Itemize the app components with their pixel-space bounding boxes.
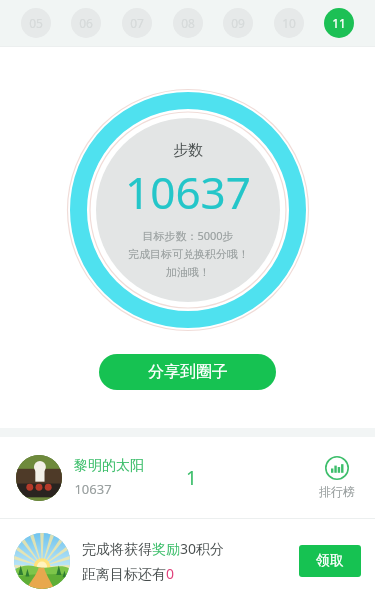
staticText: 黎明的太阳: [74, 457, 144, 475]
staticText: 分享到圈子: [148, 362, 228, 382]
button[interactable]: 09: [223, 8, 253, 38]
staticText: 加油哦！: [166, 265, 210, 279]
staticText: 11: [332, 15, 346, 31]
button[interactable]: 05: [21, 8, 51, 38]
staticText: 07: [130, 15, 144, 31]
staticText: 距离目标还有0: [82, 564, 175, 583]
staticText: 排行榜: [319, 484, 355, 499]
button[interactable]: 排行榜 Leaderboard: [315, 452, 359, 503]
button[interactable]: 领取: [299, 545, 361, 577]
staticText: 目标步数：5000步: [142, 228, 234, 243]
staticText: 步数: [173, 141, 203, 160]
button[interactable]: 06: [71, 8, 101, 38]
button[interactable]: 07: [122, 8, 152, 38]
staticText: 完成将获得奖励30积分: [82, 539, 225, 558]
button[interactable]: 08: [173, 8, 203, 38]
staticText: 10: [282, 15, 296, 31]
staticText: 09: [231, 15, 245, 31]
staticText: 06: [79, 15, 93, 31]
staticText: 领取: [316, 552, 344, 570]
staticText: 08: [181, 15, 195, 31]
staticText: 完成目标可兑换积分哦！: [128, 247, 249, 261]
button[interactable]: 11: [324, 8, 354, 38]
button[interactable]: 10: [274, 8, 304, 38]
staticText: 05: [29, 15, 43, 31]
staticText: 10637: [125, 162, 251, 222]
button[interactable]: 黎明的太阳: [0, 437, 375, 518]
button[interactable]: 分享到圈子: [99, 354, 276, 390]
staticText: 1: [186, 465, 197, 491]
staticText: 10637: [74, 480, 112, 498]
